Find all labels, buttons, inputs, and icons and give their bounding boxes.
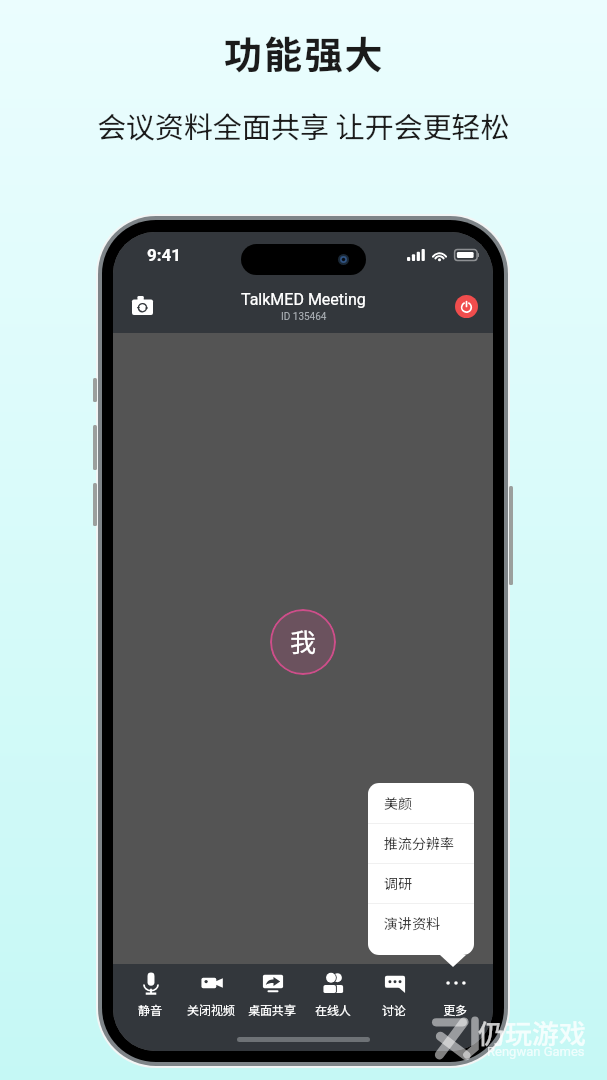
staticText: 仍玩游戏 [478,1013,586,1052]
staticText: ID 135464 [281,311,327,323]
staticText: 功能强大 [224,25,385,80]
staticText: 美颜 [384,793,412,813]
button[interactable]: 关闭视频 [181,971,242,1018]
staticText: 调研 [384,873,412,893]
button[interactable]: 在线人 [303,971,364,1018]
button[interactable]: 桌面共享 [242,971,303,1018]
button[interactable]: 讨论 [364,971,425,1018]
staticText: 会议资料全面共享 让开会更轻松 [97,104,510,146]
staticText: 静音 [138,1001,163,1018]
staticText: 桌面共享 [248,1001,297,1018]
staticText: Rengwan Games [487,1044,585,1059]
staticText: 9:41 [147,245,182,265]
button[interactable]: 更多 [425,971,486,1018]
staticText: 演讲资料 [384,913,440,933]
staticText: 我 [290,622,317,660]
button[interactable]: 调研 [368,863,474,903]
staticText: 更多 [443,1001,468,1018]
button[interactable]: 推流分辨率 [368,823,474,863]
button[interactable]: End meeting [455,295,478,318]
staticText: TalkMED Meeting [241,290,366,309]
staticText: 在线人 [315,1001,352,1018]
button[interactable]: 演讲资料 [368,903,474,943]
button[interactable]: Switch camera [125,288,159,322]
button[interactable]: 静音 [120,971,181,1018]
staticText: 关闭视频 [187,1001,236,1018]
staticText: 讨论 [382,1001,407,1018]
button[interactable]: 美颜 [368,783,474,823]
staticText: 推流分辨率 [384,833,454,853]
